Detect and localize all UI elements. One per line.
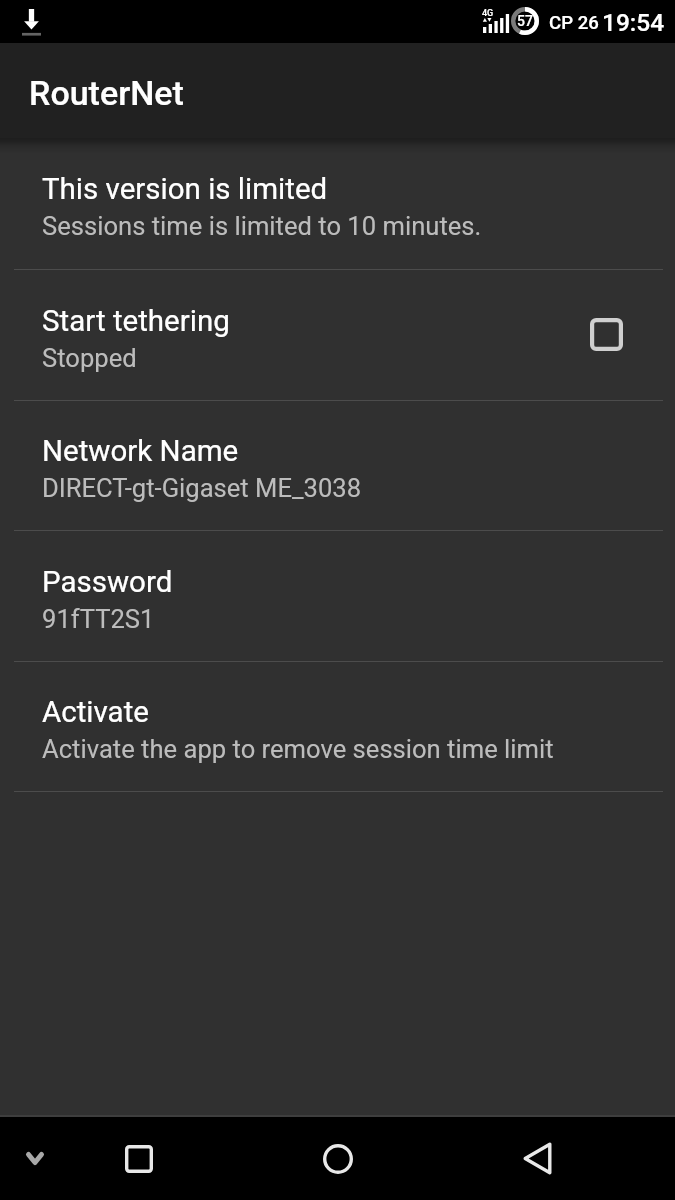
staticText: Stopped [42, 343, 137, 373]
staticText: Activate [42, 695, 149, 730]
other: Download in progress [22, 9, 41, 36]
staticText: Network Name [42, 434, 239, 469]
staticText: Password [42, 565, 173, 600]
staticText: Activate the app to remove session time … [42, 734, 554, 764]
button[interactable]: Hide keyboard [4, 1117, 66, 1200]
staticText: RouterNet [29, 73, 184, 113]
button[interactable]: Network Name [0, 401, 675, 530]
staticText: CP 26 [549, 12, 599, 34]
button[interactable]: Password [0, 531, 675, 661]
staticText: 91fTT2S1 [42, 604, 155, 634]
staticText: DIRECT-gt-Gigaset ME_3038 [42, 473, 362, 503]
button[interactable]: Start tethering [0, 270, 675, 400]
staticText: Sessions time is limited to 10 minutes. [42, 211, 482, 241]
staticText: This version is limited [42, 172, 328, 207]
staticText: 19:54 [602, 8, 665, 37]
button[interactable]: Recent apps [108, 1117, 169, 1200]
staticText: Start tethering [42, 304, 230, 339]
button[interactable]: Back [507, 1117, 568, 1200]
staticText: 57 [517, 13, 533, 29]
button[interactable]: Activate [0, 662, 675, 791]
button[interactable]: Home [307, 1117, 368, 1200]
button[interactable]: This version is limited [0, 138, 675, 269]
staticText: 4G [482, 8, 494, 19]
